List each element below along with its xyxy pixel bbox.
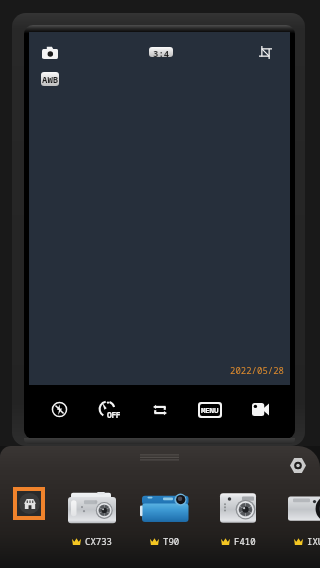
button[interactable]: F410 <box>203 492 273 547</box>
button[interactable]: Self timer off <box>88 385 132 434</box>
button[interactable]: 3:4 <box>149 47 173 57</box>
button[interactable]: Photo mode <box>29 32 290 385</box>
staticText: OFF <box>107 409 121 420</box>
staticText: 3:4 <box>153 47 170 57</box>
button[interactable]: Settings <box>290 458 306 473</box>
button[interactable]: Video mode <box>238 385 282 434</box>
staticText: F410 <box>234 535 256 547</box>
button[interactable]: CX733 <box>57 492 127 547</box>
button[interactable]: Photo mode <box>42 46 58 59</box>
button[interactable]: T90 <box>130 492 200 547</box>
button[interactable]: IXUS <box>276 492 320 547</box>
staticText: T90 <box>163 535 180 547</box>
staticText: AWB <box>42 73 59 85</box>
staticText: IXUS <box>307 535 320 547</box>
button[interactable]: AWB <box>41 72 59 86</box>
button[interactable]: Menu <box>188 385 232 434</box>
button[interactable]: Camera store <box>17 491 41 516</box>
button[interactable]: Crop <box>259 46 272 59</box>
button[interactable]: Switch camera <box>138 385 182 434</box>
staticText: CX733 <box>85 535 113 547</box>
staticText: MENU <box>201 405 219 415</box>
button[interactable]: Flash off <box>37 385 81 434</box>
staticText: 2022/05/28 <box>230 364 285 376</box>
